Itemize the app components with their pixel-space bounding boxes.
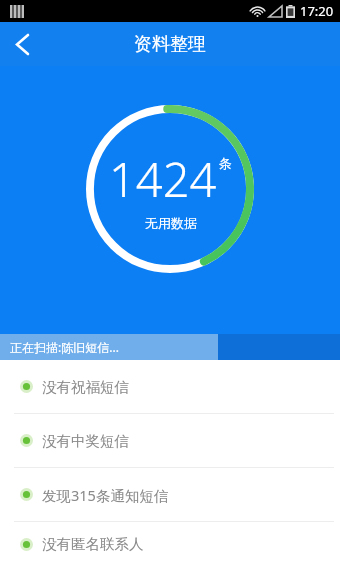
- button[interactable]: 没有匿名联系人: [0, 522, 340, 566]
- staticText: 条: [219, 155, 232, 171]
- button[interactable]: 没有中奖短信: [0, 414, 340, 467]
- staticText: 资料整理: [134, 33, 206, 56]
- staticText: 17:20: [300, 2, 334, 20]
- button[interactable]: 没有祝福短信: [0, 360, 340, 413]
- staticText: 无用数据: [145, 215, 197, 231]
- button[interactable]: Back: [0, 22, 44, 66]
- staticText: 正在扫描:陈旧短信...: [10, 339, 119, 355]
- button[interactable]: 发现315条通知短信: [0, 468, 340, 521]
- staticText: 没有匿名联系人: [42, 535, 144, 553]
- staticText: 没有祝福短信: [42, 378, 129, 396]
- staticText: 没有中奖短信: [42, 432, 129, 450]
- staticText: 1424: [109, 147, 217, 211]
- staticText: 发现315条通知短信: [42, 485, 169, 505]
